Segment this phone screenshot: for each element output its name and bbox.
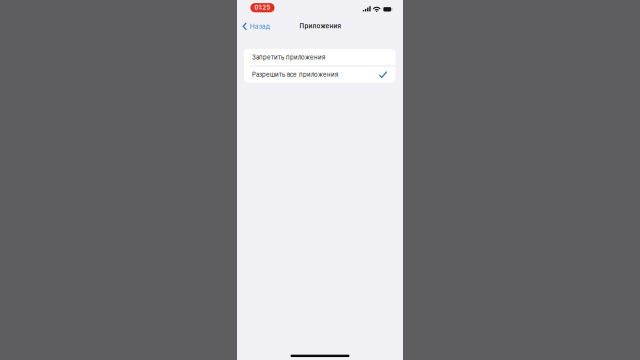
staticText: Назад (250, 22, 270, 30)
button[interactable]: Запретить приложения (244, 49, 395, 66)
button[interactable]: Разрешить все приложения (244, 66, 395, 83)
button[interactable]: Назад (237, 18, 275, 34)
staticText: Запретить приложения (252, 54, 325, 61)
staticText: Приложения (299, 22, 340, 30)
staticText: 01:25 (254, 4, 270, 11)
staticText: Разрешить все приложения (252, 71, 338, 78)
